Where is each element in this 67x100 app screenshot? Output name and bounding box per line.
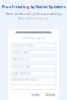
staticText: Reset (31, 93, 39, 97)
button[interactable]: Reset (30, 93, 41, 97)
staticText: Native speakers will perfect your writin… (5, 12, 61, 16)
staticText: Write with confidence (18, 17, 49, 20)
staticText: Get a Free Quote (21, 36, 45, 40)
staticText: Email address (13, 72, 30, 75)
staticText: Document type (13, 44, 34, 47)
staticText: Service level (13, 51, 29, 54)
staticText: Submit (46, 93, 55, 97)
staticText: Word count (13, 58, 29, 61)
staticText: Proofreading by Native Speakers (1, 4, 65, 9)
button[interactable]: Submit (45, 93, 56, 97)
staticText: Delivery date (13, 65, 31, 68)
staticText: Additional notes (13, 78, 37, 81)
